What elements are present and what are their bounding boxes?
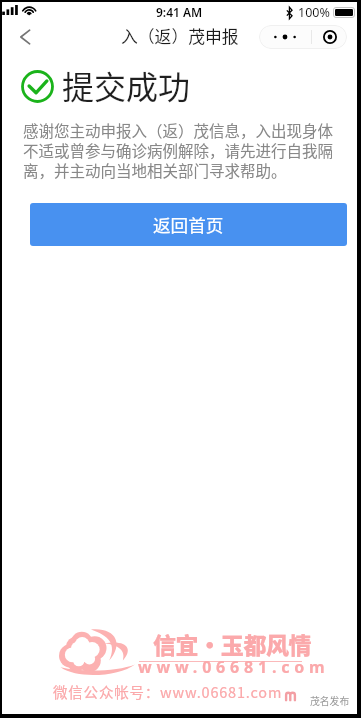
staticText: 茂名发布 [310, 694, 350, 708]
staticText: 微信公众帐号：www.06681.com [53, 681, 283, 702]
staticText: 100% [298, 4, 330, 21]
button[interactable]: Back [16, 26, 38, 48]
staticText: 入（返）茂申报 [121, 24, 239, 48]
button[interactable]: Close mini program [312, 25, 347, 49]
staticText: 提交成功 [62, 62, 191, 108]
button[interactable]: 返回首页 [30, 203, 347, 246]
staticText: www.06681.com [138, 656, 330, 678]
button[interactable]: More options [259, 25, 311, 49]
staticText: 返回首页 [153, 212, 224, 237]
staticText: 信宜·玉都风情 [153, 627, 312, 660]
staticText: 感谢您主动申报入（返）茂信息，入出现身体不适或曾参与确诊病例解除，请先进行自我隔… [23, 121, 343, 181]
staticText: 9:41 AM [156, 4, 203, 20]
